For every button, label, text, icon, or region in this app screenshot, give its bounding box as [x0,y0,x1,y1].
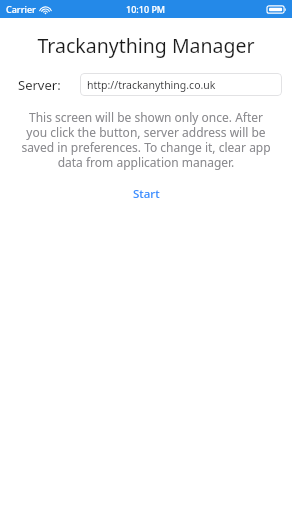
staticText: 10:10 PM [126,3,166,15]
staticText: Server: [18,76,61,94]
staticText: Carrier [6,3,36,15]
button[interactable]: Start [121,182,172,206]
other: Wi-Fi signal [40,5,51,14]
staticText: Trackanything Manager [0,32,292,59]
staticText: This screen will be shown only once. Aft… [20,109,272,170]
staticText: Start [133,186,160,202]
staticText: http://trackanything.co.uk [87,78,216,92]
other: Battery full [267,5,286,14]
button[interactable]: http://trackanything.co.uk [80,73,282,96]
